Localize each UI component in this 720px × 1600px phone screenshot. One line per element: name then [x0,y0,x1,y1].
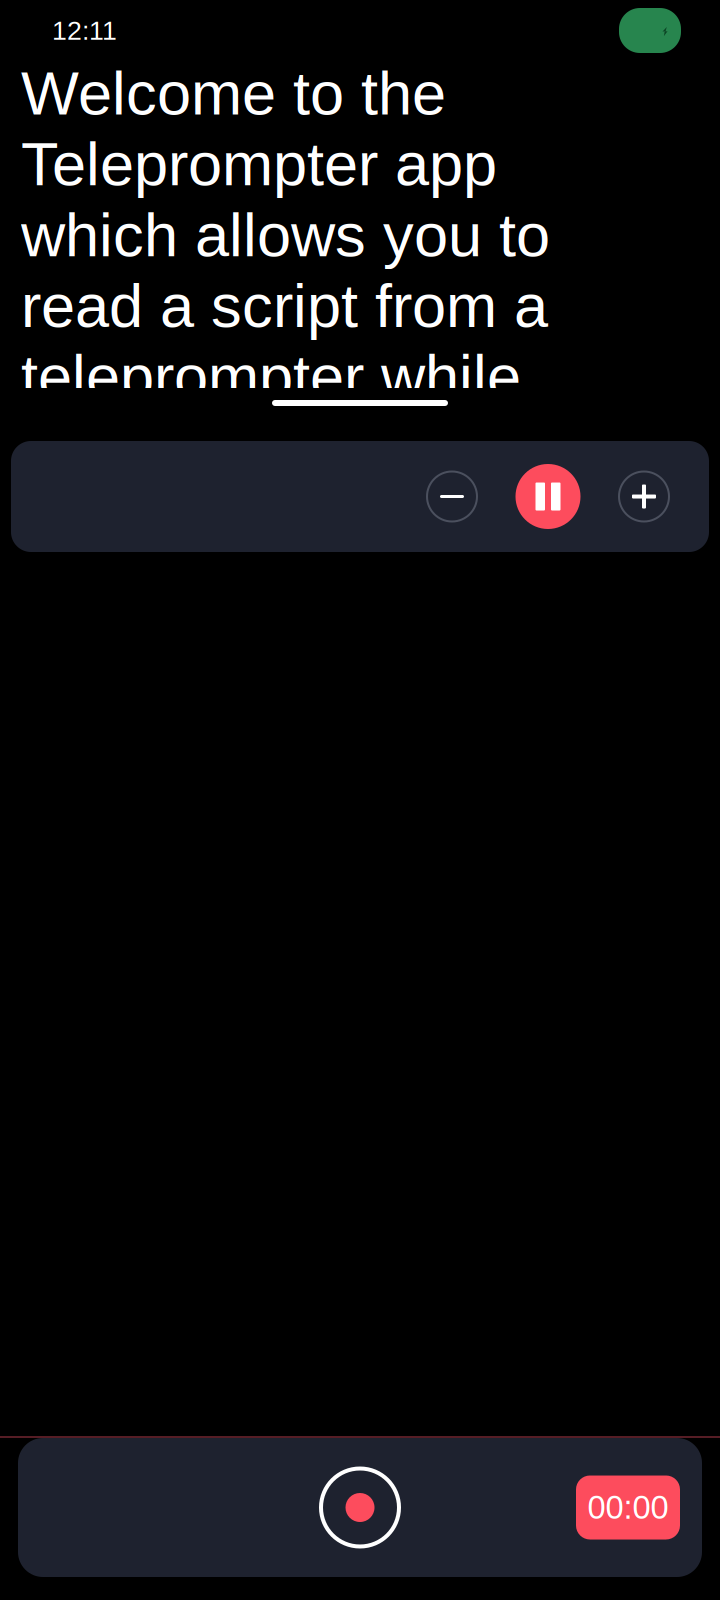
button[interactable]: Decrease speed [416,460,488,532]
button[interactable]: Increase speed [608,460,680,532]
button[interactable]: 00:00 [576,1475,680,1539]
button[interactable]: Pause [507,455,589,537]
button[interactable]: Record [310,1457,410,1557]
staticText: 12:11 [52,16,117,45]
staticText: 00:00 [587,1489,668,1526]
staticText: Welcome to the Teleprompter app which al… [21,59,550,552]
